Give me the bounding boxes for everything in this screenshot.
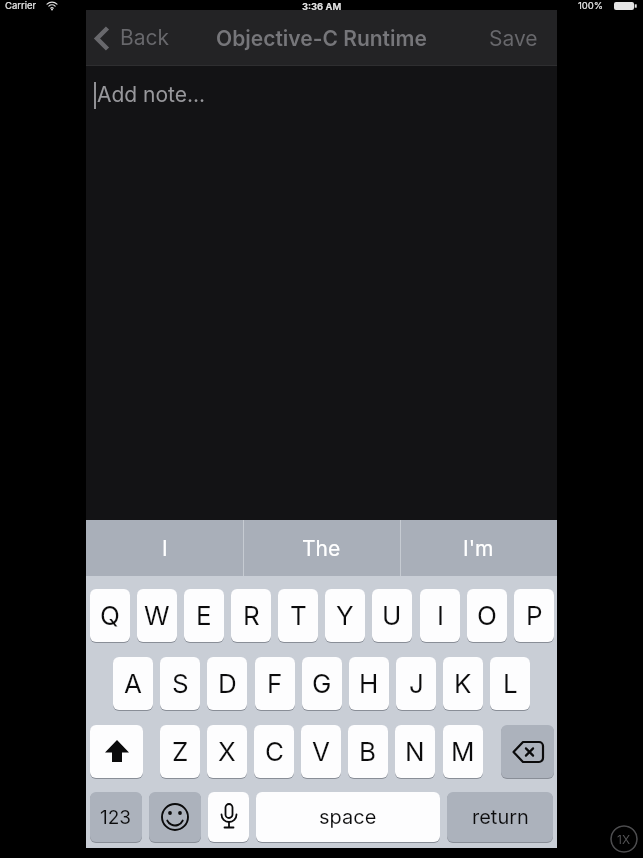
staticText: G — [312, 668, 332, 699]
button[interactable]: Y — [325, 589, 365, 642]
button[interactable]: F — [255, 657, 295, 710]
staticText: B — [359, 736, 377, 767]
staticText: P — [526, 600, 543, 631]
staticText: I — [437, 600, 444, 631]
staticText: F — [267, 668, 283, 699]
button[interactable]: B — [348, 725, 388, 778]
button[interactable]: R — [231, 589, 271, 642]
button[interactable]: 1X — [610, 825, 638, 853]
staticText: M — [451, 736, 475, 767]
staticText: 3:36 AM — [302, 1, 342, 12]
staticText: H — [359, 668, 379, 699]
button[interactable]: X — [207, 725, 247, 778]
staticText: L — [503, 668, 518, 699]
button[interactable]: J — [396, 657, 436, 710]
button[interactable]: P — [514, 589, 554, 642]
staticText: Save — [489, 26, 538, 51]
button[interactable]: I — [420, 589, 460, 642]
button[interactable]: Add note... — [86, 66, 557, 520]
button[interactable] — [90, 725, 143, 778]
staticText: space — [319, 805, 377, 829]
button[interactable]: Q — [90, 589, 130, 642]
staticText: Carrier — [5, 0, 37, 11]
staticText: The — [302, 536, 341, 561]
button[interactable]: Back — [86, 10, 176, 66]
button[interactable]: W — [137, 589, 177, 642]
staticText: D — [218, 668, 237, 699]
staticText: return — [472, 805, 529, 829]
staticText: R — [243, 600, 260, 631]
button[interactable]: 123 — [90, 792, 142, 842]
staticText: Back — [120, 25, 170, 50]
button[interactable]: C — [254, 725, 294, 778]
button[interactable]: L — [490, 657, 530, 710]
button[interactable]: S — [160, 657, 200, 710]
staticText: U — [382, 600, 402, 631]
staticText: Z — [172, 736, 189, 767]
staticText: T — [290, 600, 307, 631]
button[interactable]: Z — [160, 725, 200, 778]
staticText: N — [405, 736, 425, 767]
staticText: 123 — [100, 806, 132, 829]
button[interactable]: G — [302, 657, 342, 710]
staticText: S — [172, 668, 189, 699]
button[interactable]: return — [447, 792, 553, 842]
button[interactable]: U — [372, 589, 412, 642]
staticText: 1X — [617, 832, 631, 847]
button[interactable]: Save — [508, 26, 557, 51]
staticText: O — [477, 600, 497, 631]
button[interactable]: N — [395, 725, 435, 778]
staticText: J — [409, 668, 424, 699]
staticText: Add note... — [97, 82, 206, 107]
button[interactable]: D — [207, 657, 247, 710]
button[interactable]: E — [184, 589, 224, 642]
staticText: I — [162, 536, 168, 561]
button[interactable]: H — [349, 657, 389, 710]
staticText: Objective-C Runtime — [216, 26, 427, 51]
button[interactable]: T — [278, 589, 318, 642]
button[interactable]: O — [467, 589, 507, 642]
button[interactable]: space — [256, 792, 440, 842]
button[interactable] — [208, 792, 249, 842]
staticText: E — [196, 600, 212, 631]
staticText: X — [218, 736, 236, 767]
staticText: 100% — [578, 0, 604, 11]
button[interactable]: The — [243, 520, 400, 576]
button[interactable]: M — [443, 725, 483, 778]
button[interactable]: A — [113, 657, 153, 710]
button[interactable]: I — [86, 520, 243, 576]
button[interactable]: K — [443, 657, 483, 710]
staticText: K — [454, 668, 472, 699]
staticText: A — [124, 668, 142, 699]
button[interactable] — [149, 792, 201, 842]
staticText: W — [144, 600, 170, 631]
staticText: V — [312, 736, 330, 767]
staticText: Q — [100, 600, 120, 631]
staticText: C — [265, 736, 284, 767]
staticText: Y — [336, 600, 354, 631]
staticText: I'm — [463, 536, 494, 561]
button[interactable] — [501, 725, 554, 778]
button[interactable]: V — [301, 725, 341, 778]
button[interactable]: I'm — [400, 520, 557, 576]
